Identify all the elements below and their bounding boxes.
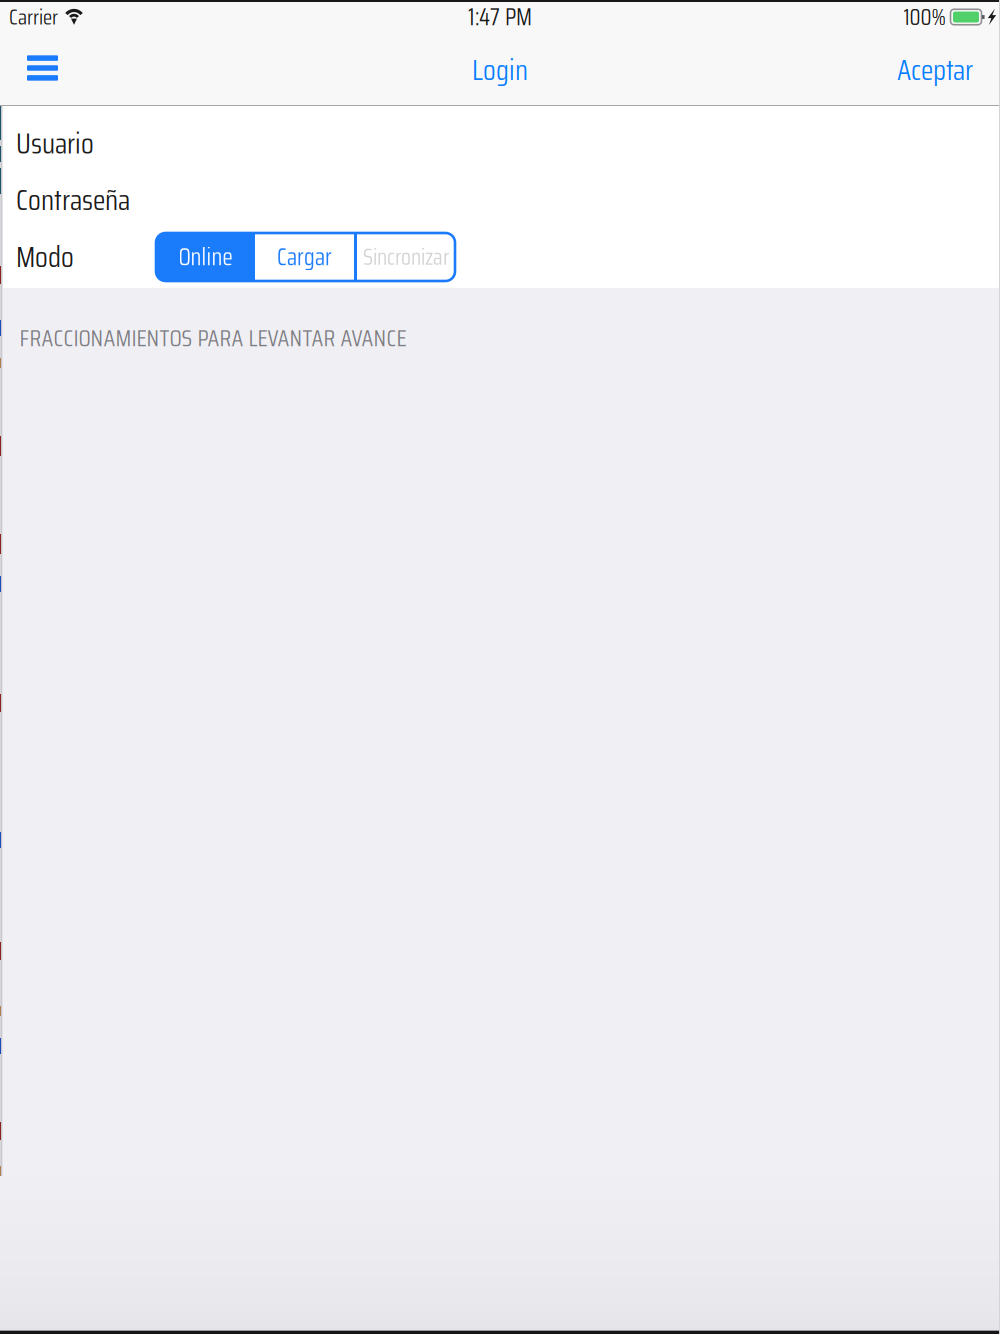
button[interactable]: Cargar (255, 233, 354, 281)
staticText: Usuario (16, 121, 94, 166)
staticText: Contraseña (16, 177, 130, 223)
button[interactable]: Aceptar (877, 33, 1000, 106)
staticText: Sincronizar (363, 239, 449, 275)
button[interactable]: Sincronizar (357, 233, 455, 281)
button[interactable]: Login (452, 33, 548, 106)
staticText: Modo (16, 234, 74, 280)
staticText: 100% (903, 0, 945, 35)
staticText: Aceptar (897, 47, 973, 92)
staticText: Login (472, 47, 528, 92)
staticText: Online (178, 238, 232, 276)
staticText: 1:47 PM (468, 0, 532, 36)
button[interactable]: Online (156, 233, 255, 281)
button[interactable]: Menu (0, 41, 78, 99)
staticText: Cargar (277, 238, 332, 276)
staticText: FRACCIONAMIENTOS PARA LEVANTAR AVANCE (20, 319, 407, 357)
staticText: Carrier (9, 0, 58, 34)
